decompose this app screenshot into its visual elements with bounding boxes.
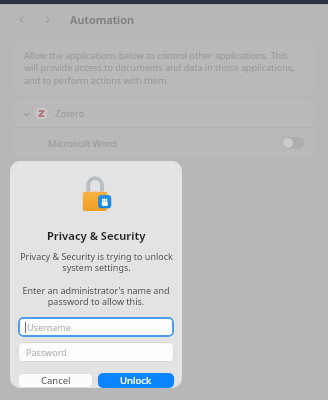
- button[interactable]: Unlock: [98, 373, 174, 388]
- button[interactable]: Forward: [38, 10, 56, 28]
- staticText: Automation: [70, 12, 135, 27]
- button[interactable]: Zotero: [14, 100, 314, 127]
- staticText: Unlock: [120, 374, 152, 387]
- staticText: Privacy & Security is trying to unlock s…: [20, 250, 173, 274]
- button[interactable]: Microsoft Word toggle, off: [282, 137, 304, 149]
- button[interactable]: Username: [18, 317, 174, 337]
- staticText: Password: [26, 346, 67, 358]
- staticText: Privacy & Security: [47, 228, 146, 243]
- button[interactable]: Cancel: [18, 373, 93, 388]
- staticText: Zotero: [55, 107, 85, 120]
- staticText: Microsoft Word: [48, 137, 117, 150]
- button[interactable]: Microsoft Word: [14, 128, 314, 158]
- button[interactable]: Password: [18, 342, 174, 362]
- button[interactable]: Back: [12, 10, 30, 28]
- staticText: Allow the applications below to control …: [24, 49, 304, 87]
- staticText: Cancel: [41, 374, 71, 387]
- staticText: Enter an administrator's name and passwo…: [22, 284, 170, 308]
- staticText: Username: [27, 321, 71, 333]
